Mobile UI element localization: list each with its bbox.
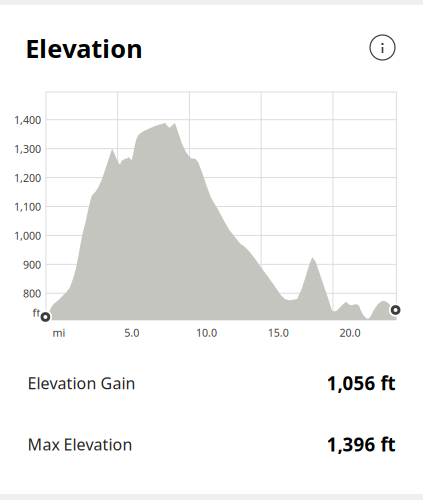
- button[interactable]: Info: [362, 27, 402, 67]
- staticText: 1,000: [14, 228, 41, 243]
- staticText: 15.0: [268, 325, 289, 340]
- staticText: 1,400: [14, 113, 41, 127]
- staticText: 10.0: [196, 325, 217, 340]
- staticText: 20.0: [339, 325, 360, 340]
- staticText: Elevation Gain: [27, 372, 135, 394]
- staticText: Elevation: [25, 31, 142, 65]
- staticText: 900: [23, 257, 41, 272]
- staticText: 1,100: [14, 200, 41, 214]
- staticText: 1,200: [14, 171, 41, 185]
- staticText: 1,300: [14, 142, 41, 156]
- staticText: 800: [23, 286, 41, 301]
- staticText: 5.0: [124, 325, 139, 340]
- staticText: 1,396 ft: [326, 432, 395, 457]
- staticText: ft: [32, 305, 40, 320]
- staticText: mi: [52, 325, 65, 340]
- staticText: 1,056 ft: [326, 371, 395, 395]
- staticText: Max Elevation: [27, 434, 132, 455]
